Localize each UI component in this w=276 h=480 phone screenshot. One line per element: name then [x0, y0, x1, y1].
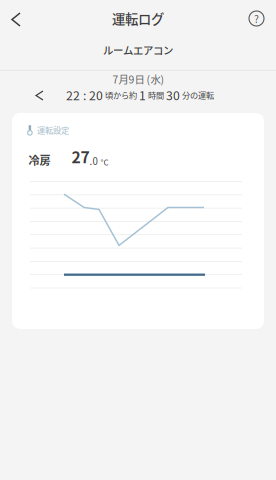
staticText: 頃から約	[103, 89, 139, 101]
button[interactable]: ヘルプ	[239, 1, 273, 35]
button[interactable]: 前の運転	[28, 85, 50, 105]
staticText: 運転設定	[37, 124, 69, 136]
staticText: °C	[100, 156, 108, 168]
staticText: 7月9日 (水)	[112, 71, 164, 87]
staticText: 時間	[146, 89, 166, 101]
staticText: ?	[254, 11, 259, 26]
staticText: ルームエアコン	[103, 42, 173, 58]
staticText: 22 : 20	[66, 86, 103, 104]
staticText: 冷房	[28, 152, 50, 168]
staticText: 分の運転	[180, 89, 214, 101]
button[interactable]: 戻る	[0, 2, 33, 36]
staticText: .0	[89, 154, 97, 168]
staticText: 運転ログ	[112, 9, 164, 28]
staticText: 1	[139, 86, 146, 104]
staticText: 27	[71, 145, 89, 168]
staticText: 30	[166, 86, 180, 104]
